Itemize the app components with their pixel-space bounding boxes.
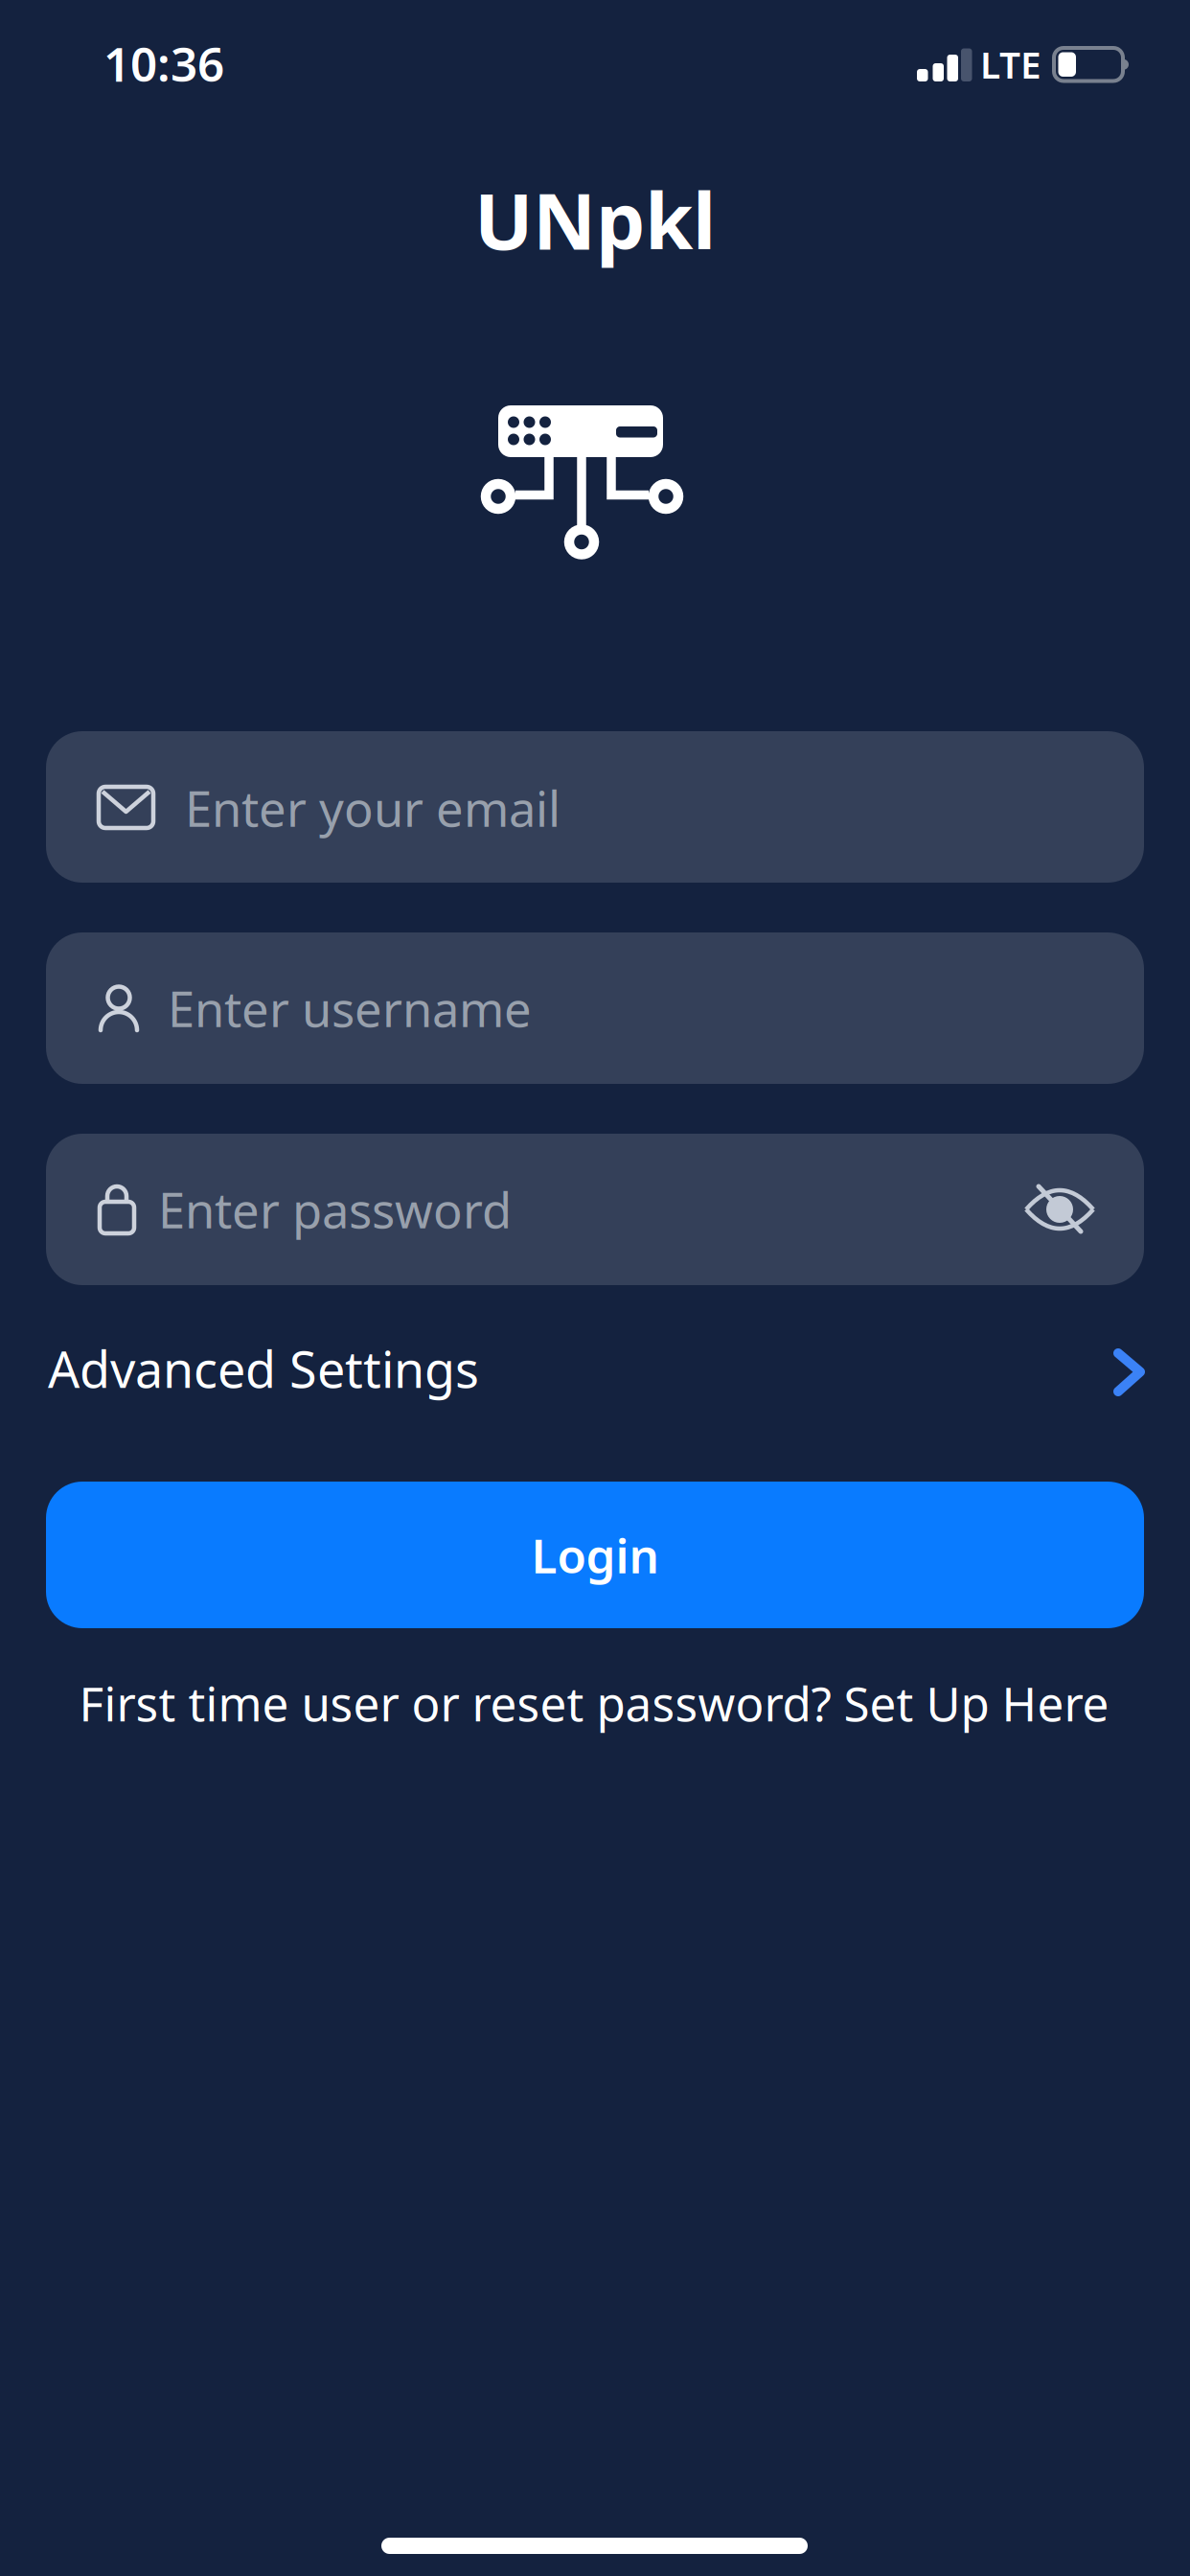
button[interactable]: Enter password <box>0 0 1190 2576</box>
staticText: First time user or reset password? Set U… <box>79 1672 1109 1734</box>
button[interactable]: Show password <box>0 0 1190 2576</box>
staticText: Advanced Settings <box>48 1335 479 1402</box>
staticText: Login <box>531 1523 659 1586</box>
staticText: 10:36 <box>103 32 224 95</box>
button[interactable]: Advanced Settings <box>0 0 1190 2576</box>
button[interactable]: First time user or reset password? Set U… <box>79 1672 1109 1734</box>
button[interactable]: Enter your email <box>0 0 1190 2576</box>
staticText: Enter your email <box>185 776 561 840</box>
staticText: Enter username <box>168 976 532 1040</box>
staticText: UNpkl <box>474 168 716 271</box>
staticText: Enter password <box>158 1177 512 1242</box>
staticText: LTE <box>980 40 1041 89</box>
button[interactable]: Enter username <box>0 0 1190 2576</box>
button[interactable]: Login <box>46 1482 1144 1628</box>
